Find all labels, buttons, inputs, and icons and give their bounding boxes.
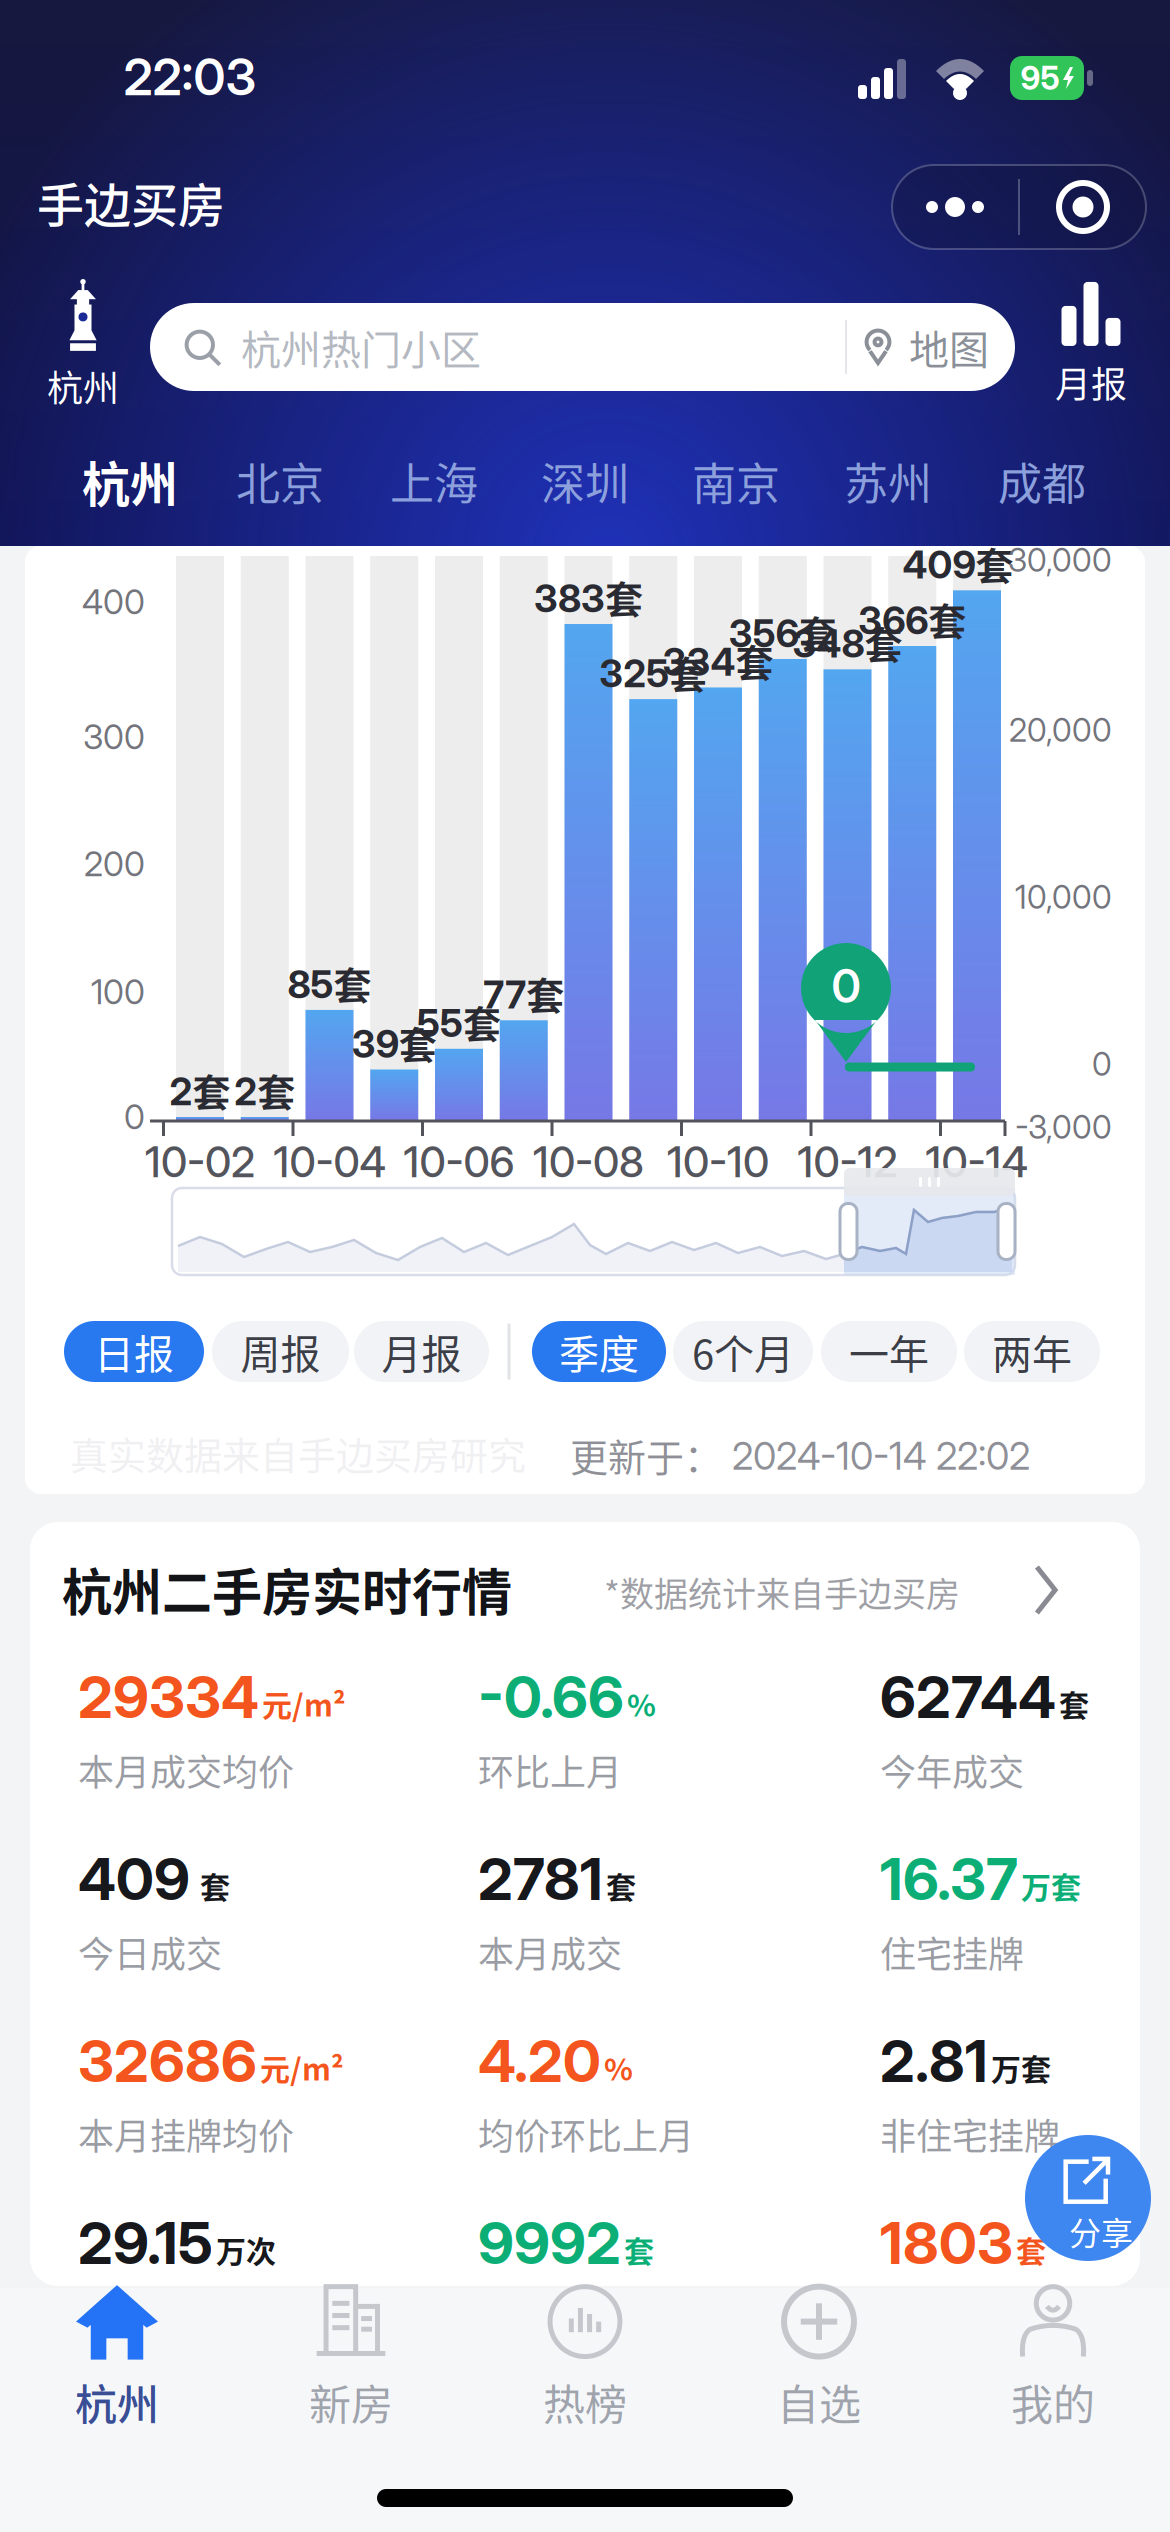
button[interactable]: 南京: [671, 446, 801, 516]
staticText: 杭州热门小区: [241, 318, 481, 376]
button[interactable]: 杭州: [28, 280, 138, 410]
button[interactable]: 月报: [1036, 280, 1146, 410]
staticText: 2套: [169, 1062, 230, 1117]
button[interactable]: 两年: [964, 1321, 1100, 1382]
staticText: 2.81: [880, 2026, 988, 2096]
staticText: 热榜: [543, 2372, 627, 2432]
staticText: 周报: [240, 1322, 320, 1380]
staticText: 套: [1059, 1682, 1089, 1725]
staticText: 100: [91, 971, 145, 1012]
staticText: 32686: [78, 2026, 257, 2096]
staticText: 409: [78, 1844, 190, 1914]
staticText: 10-04: [273, 1137, 385, 1187]
button[interactable]: 新房: [251, 2273, 451, 2443]
staticText: 北京: [236, 449, 324, 513]
staticText: 本月成交均价: [78, 1744, 294, 1796]
staticText: 自选: [777, 2372, 861, 2432]
staticText: 383套: [534, 569, 643, 624]
staticText: 85套: [287, 955, 371, 1010]
staticText: 元/m²: [262, 1682, 346, 1725]
button[interactable]: 关闭: [1019, 165, 1146, 249]
button[interactable]: 我的: [953, 2273, 1153, 2443]
staticText: 深圳: [541, 449, 629, 513]
staticText: 0: [1092, 1045, 1112, 1083]
button[interactable]: 查看详情: [65, 1544, 1105, 1634]
staticText: *数据统计来自手边买房: [604, 1567, 960, 1617]
staticText: 套: [1016, 2228, 1046, 2271]
button[interactable]: 热榜: [485, 2273, 685, 2443]
staticText: 地图: [909, 318, 989, 376]
staticText: 22:03: [123, 47, 256, 107]
staticText: 10-08: [533, 1137, 644, 1187]
button[interactable]: 一年: [821, 1321, 957, 1382]
staticText: 万套: [991, 2046, 1051, 2089]
staticText: -3,000: [1015, 1108, 1112, 1146]
button[interactable]: 季度: [532, 1321, 666, 1382]
staticText: 月报: [1055, 356, 1127, 408]
staticText: 10-02: [145, 1137, 255, 1187]
button[interactable]: 上海: [369, 446, 499, 516]
staticText: 一年: [849, 1322, 929, 1380]
button[interactable]: 6个月: [673, 1321, 813, 1382]
staticText: 本月成交: [478, 1926, 622, 1978]
staticText: 334套: [662, 633, 773, 688]
staticText: 杭州: [47, 360, 119, 412]
staticText: 30,000: [1008, 541, 1112, 579]
staticText: 杭州二手房实时行情: [62, 1553, 512, 1625]
staticText: 16.37: [880, 1844, 1018, 1914]
button[interactable]: 更多: [891, 165, 1018, 249]
staticText: 手边买房: [37, 168, 225, 236]
staticText: 325套: [599, 645, 707, 700]
staticText: 元/m²: [260, 2046, 344, 2089]
staticText: 39套: [352, 1015, 437, 1070]
staticText: 348套: [792, 615, 902, 670]
staticText: 10-14: [925, 1137, 1027, 1187]
staticText: 我的: [1011, 2372, 1095, 2432]
staticText: 10,000: [1015, 878, 1112, 916]
staticText: 套: [193, 1864, 230, 1907]
button[interactable]: 搜索: [150, 303, 1015, 391]
staticText: 29334: [78, 1662, 259, 1732]
staticText: 套: [606, 1864, 636, 1907]
staticText: 今日成交: [78, 1926, 222, 1978]
staticText: 环比上月: [478, 1744, 622, 1796]
staticText: 10-10: [667, 1137, 769, 1187]
staticText: 上海: [390, 449, 478, 513]
staticText: 29.15: [78, 2208, 213, 2278]
staticText: 真实数据来自手边买房研究: [70, 1425, 526, 1480]
button[interactable]: 深圳: [520, 446, 650, 516]
staticText: 季度: [559, 1322, 639, 1380]
staticText: 20,000: [1009, 711, 1112, 749]
staticText: 9992: [478, 2208, 621, 2278]
staticText: 409套: [902, 536, 1013, 591]
staticText: 杭州: [82, 446, 178, 516]
button[interactable]: 周报: [212, 1321, 349, 1382]
staticText: -0.66: [478, 1662, 624, 1732]
button[interactable]: 苏州: [823, 446, 953, 516]
staticText: 更新于： 2024-10-14 22:02: [570, 1427, 1030, 1482]
staticText: 成都: [998, 449, 1086, 513]
staticText: 6个月: [692, 1322, 794, 1380]
button[interactable]: 北京: [215, 446, 345, 516]
staticText: 均价环比上月: [478, 2108, 694, 2160]
button[interactable]: 分享: [1025, 2135, 1151, 2261]
staticText: 新房: [309, 2372, 393, 2432]
button[interactable]: 杭州: [65, 446, 195, 516]
staticText: 住宅挂牌: [880, 1926, 1024, 1978]
button[interactable]: 地图: [820, 303, 1014, 391]
staticText: 400: [82, 581, 145, 622]
button[interactable]: 杭州: [17, 2273, 217, 2443]
staticText: 月报: [381, 1322, 461, 1380]
staticText: 万套: [1021, 1864, 1081, 1907]
staticText: 苏州: [844, 449, 932, 513]
button[interactable]: 月报: [354, 1321, 489, 1382]
button[interactable]: 成都: [977, 446, 1107, 516]
button[interactable]: 自选: [719, 2273, 919, 2443]
staticText: 95: [1020, 59, 1059, 97]
staticText: 2781: [478, 1844, 603, 1914]
staticText: %: [604, 2046, 633, 2089]
staticText: 55套: [417, 994, 501, 1049]
staticText: 77套: [483, 966, 564, 1021]
staticText: 2套: [234, 1062, 295, 1117]
button[interactable]: 日报: [64, 1321, 204, 1382]
